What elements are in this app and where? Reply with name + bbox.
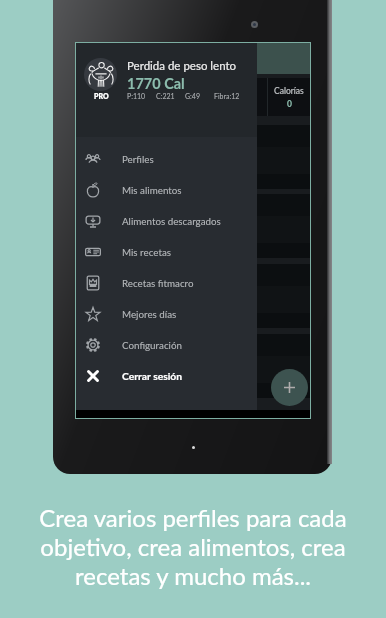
- staticText: P:110: [127, 92, 146, 100]
- staticText: Mis recetas: [122, 246, 172, 258]
- button[interactable]: Cal:0: [76, 264, 310, 328]
- button[interactable]: Cal:0: [76, 194, 310, 258]
- button[interactable]: Configuración: [76, 329, 257, 360]
- staticText: Mejores días: [122, 308, 177, 320]
- staticText: Proteínas: [82, 86, 117, 96]
- staticText: Mis alimentos: [122, 184, 182, 196]
- staticText: Calorías: [274, 86, 304, 96]
- button[interactable]: Perfiles: [76, 143, 257, 174]
- button[interactable]: Cerrar sesión: [76, 360, 257, 391]
- staticText: Crea varios perfiles para cada objetivo,…: [33, 503, 353, 590]
- staticText: C:221: [156, 92, 175, 100]
- button[interactable]: Mis alimentos: [76, 174, 257, 205]
- staticText: 0: [287, 99, 292, 109]
- button[interactable]: Añadir comida: [271, 369, 308, 406]
- button[interactable]: Alimentos descargados: [76, 205, 257, 236]
- button[interactable]: Cal:0: [76, 334, 310, 398]
- staticText: G:49: [185, 92, 200, 100]
- staticText: Perdida de peso lento: [127, 59, 237, 73]
- staticText: Cerrar sesión: [122, 370, 183, 382]
- staticText: 1770 Cal: [127, 75, 185, 92]
- button[interactable]: Mejores días: [76, 298, 257, 329]
- staticText: Recetas fitmacro: [122, 277, 194, 289]
- staticText: Configuración: [122, 339, 182, 351]
- staticText: PRO: [94, 92, 109, 100]
- staticText: Fibra: [234, 86, 253, 96]
- button[interactable]: Recetas fitmacro: [76, 267, 257, 298]
- staticText: Grasas: [183, 86, 208, 96]
- staticText: Carbos: [134, 86, 161, 96]
- button[interactable]: Cal:0: [76, 125, 310, 189]
- staticText: Perfiles: [122, 153, 154, 165]
- staticText: Alimentos descargados: [122, 215, 221, 227]
- button[interactable]: Mis recetas: [76, 236, 257, 267]
- staticText: Fibra:12: [214, 92, 240, 100]
